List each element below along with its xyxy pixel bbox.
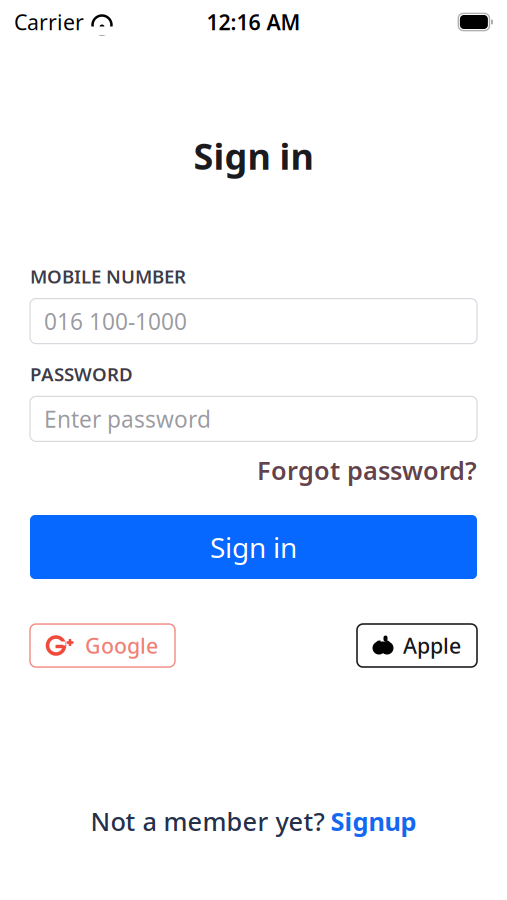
- staticText: PASSWORD: [30, 362, 133, 386]
- staticText: 12:16 AM: [206, 8, 300, 36]
- staticText: Carrier: [14, 8, 84, 36]
- staticText: Forgot password?: [257, 453, 477, 487]
- button[interactable]: Forgot password?: [257, 453, 477, 487]
- staticText: Apple: [403, 631, 461, 660]
- staticText: Sign in: [193, 132, 313, 180]
- staticText: 016 100-1000: [44, 306, 187, 336]
- staticText: Google: [85, 631, 158, 660]
- staticText: MOBILE NUMBER: [30, 264, 186, 289]
- staticText: Signup: [330, 804, 416, 838]
- button[interactable]: Not a member yet?: [90, 804, 416, 838]
- staticText: Not a member yet?: [90, 804, 324, 838]
- staticText: Sign in: [210, 528, 297, 566]
- staticText: Enter password: [44, 404, 211, 434]
- button[interactable]: Apple: [357, 624, 477, 667]
- button[interactable]: Google: [30, 624, 175, 667]
- button[interactable]: Sign in: [30, 515, 477, 579]
